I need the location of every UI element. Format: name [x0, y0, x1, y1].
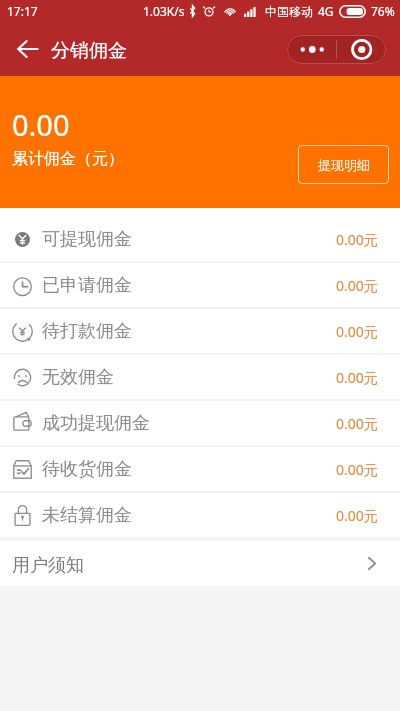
button[interactable]: 可提现佣金: [0, 217, 400, 261]
staticText: 提现明细: [318, 157, 370, 173]
staticText: 0.00元: [336, 322, 378, 341]
staticText: 分销佣金: [51, 39, 127, 63]
staticText: 0.00元: [336, 414, 378, 433]
staticText: 无效佣金: [42, 366, 114, 389]
button[interactable]: 已申请佣金: [0, 263, 400, 307]
button[interactable]: Back: [6, 28, 48, 70]
button[interactable]: 提现明细: [298, 145, 389, 184]
button[interactable]: 无效佣金: [0, 355, 400, 399]
staticText: 成功提现佣金: [42, 412, 150, 435]
staticText: 待打款佣金: [42, 320, 132, 343]
staticText: 76%: [371, 3, 395, 19]
staticText: 0.00元: [336, 230, 378, 249]
staticText: 待收货佣金: [42, 458, 132, 481]
button[interactable]: 未结算佣金: [0, 493, 400, 537]
staticText: 17:17: [7, 3, 38, 19]
staticText: 1.03K/s: [143, 3, 185, 19]
staticText: 用户须知: [12, 554, 84, 577]
staticText: 中国移动: [265, 4, 313, 19]
button[interactable]: 成功提现佣金: [0, 401, 400, 445]
button[interactable]: 待打款佣金: [0, 309, 400, 353]
staticText: 可提现佣金: [42, 228, 132, 251]
staticText: 0.00元: [336, 460, 378, 479]
staticText: 4G: [318, 3, 334, 19]
staticText: 0.00元: [336, 506, 378, 525]
staticText: 0.00元: [336, 368, 378, 387]
button[interactable]: Menu: [287, 35, 386, 64]
button[interactable]: 待收货佣金: [0, 447, 400, 491]
staticText: 已申请佣金: [42, 274, 132, 297]
staticText: 累计佣金（元）: [12, 149, 124, 169]
staticText: 0.00元: [336, 276, 378, 295]
button[interactable]: 用户须知: [0, 541, 400, 586]
staticText: 未结算佣金: [42, 504, 132, 527]
staticText: 0.00: [12, 105, 70, 144]
